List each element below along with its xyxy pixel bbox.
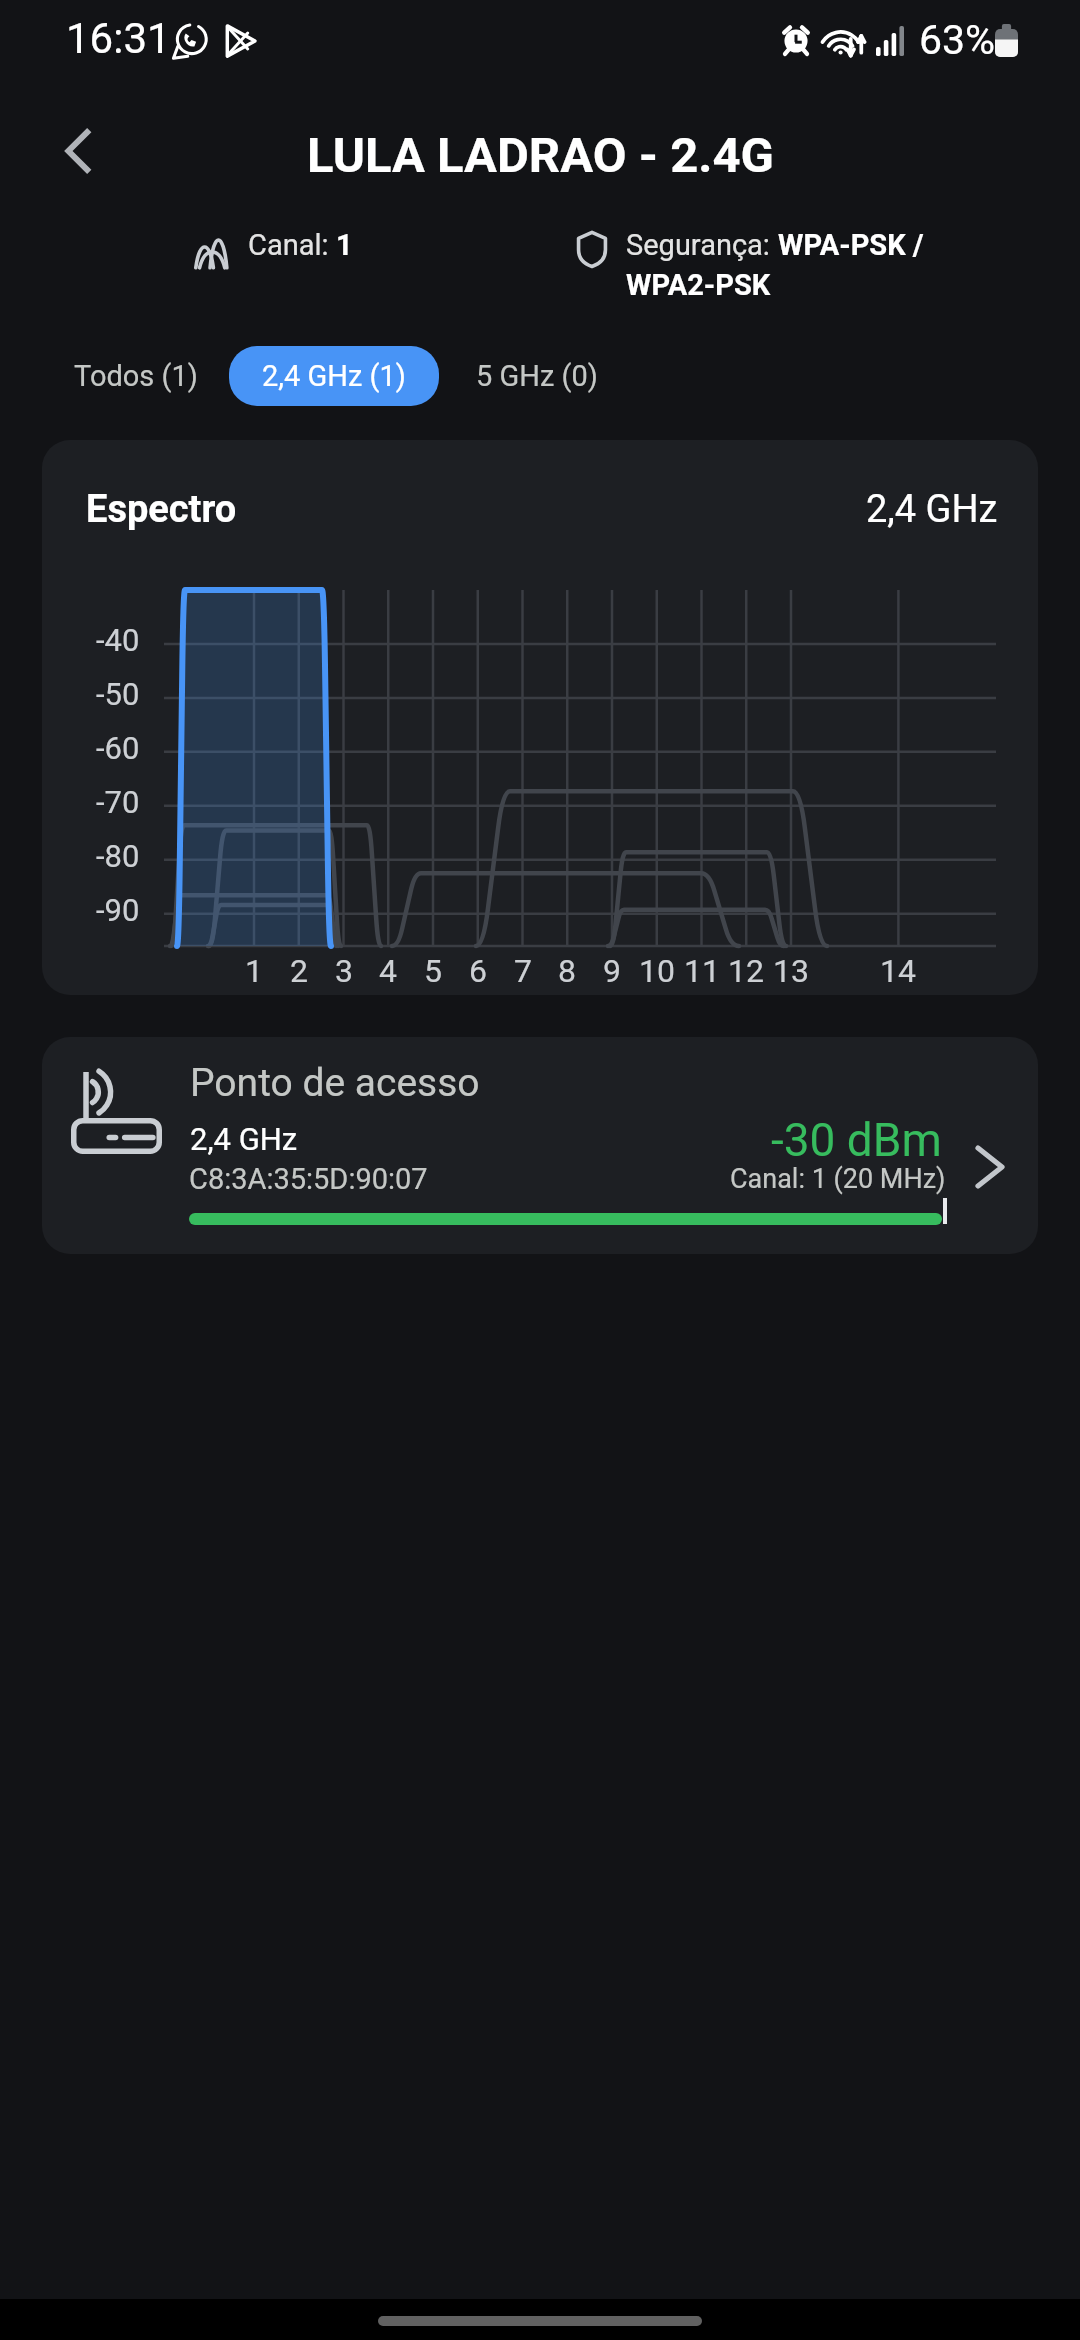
staticText: -90 <box>96 892 140 928</box>
staticText: 2,4 GHz (1) <box>262 359 406 393</box>
staticText: 1 <box>245 952 263 990</box>
staticText: 16:31 <box>66 14 171 63</box>
staticText: Espectro <box>86 487 237 532</box>
staticText: -30 dBm <box>771 1113 942 1167</box>
button[interactable]: 2,4 GHz (1) <box>229 346 439 406</box>
staticText: Canal: <box>248 228 336 262</box>
staticText: Ponto de acesso <box>190 1060 480 1106</box>
staticText: 12 <box>728 952 764 990</box>
staticText: 14 <box>880 952 916 990</box>
staticText: LULA LADRAO - 2.4G <box>307 127 774 184</box>
staticText: 9 <box>603 952 621 990</box>
staticText: 6 <box>469 952 487 990</box>
staticText: Canal: 1 (20 MHz) <box>730 1163 946 1195</box>
staticText: Segurança: <box>626 228 778 262</box>
staticText: 63% <box>919 16 996 64</box>
staticText: 10 <box>639 952 675 990</box>
staticText: 2 <box>290 952 308 990</box>
staticText: -60 <box>96 730 140 766</box>
staticText: -50 <box>96 676 140 712</box>
button[interactable]: Back <box>40 111 120 191</box>
staticText: 3 <box>335 952 353 990</box>
staticText: -70 <box>96 784 140 820</box>
staticText: 5 <box>424 952 442 990</box>
staticText: 13 <box>773 952 809 990</box>
staticText: Todos (1) <box>74 359 198 393</box>
staticText: WPA-PSK / <box>778 228 924 262</box>
staticText: -80 <box>96 838 140 874</box>
staticText: 7 <box>514 952 532 990</box>
staticText: 8 <box>558 952 576 990</box>
staticText: 2,4 GHz <box>190 1121 298 1157</box>
staticText: 11 <box>684 952 720 990</box>
button[interactable]: 5 GHz (0) <box>474 346 600 406</box>
staticText: 1 <box>336 228 353 262</box>
staticText: -40 <box>96 622 140 658</box>
staticText: WPA2-PSK <box>626 268 771 302</box>
staticText: 4 <box>379 952 397 990</box>
staticText: C8:3A:35:5D:90:07 <box>189 1162 428 1196</box>
staticText: 5 GHz (0) <box>476 359 598 393</box>
staticText: 2,4 GHz <box>866 487 998 532</box>
button[interactable]: Ponto de acesso <box>42 1037 1038 1254</box>
button[interactable]: Todos (1) <box>72 346 200 406</box>
